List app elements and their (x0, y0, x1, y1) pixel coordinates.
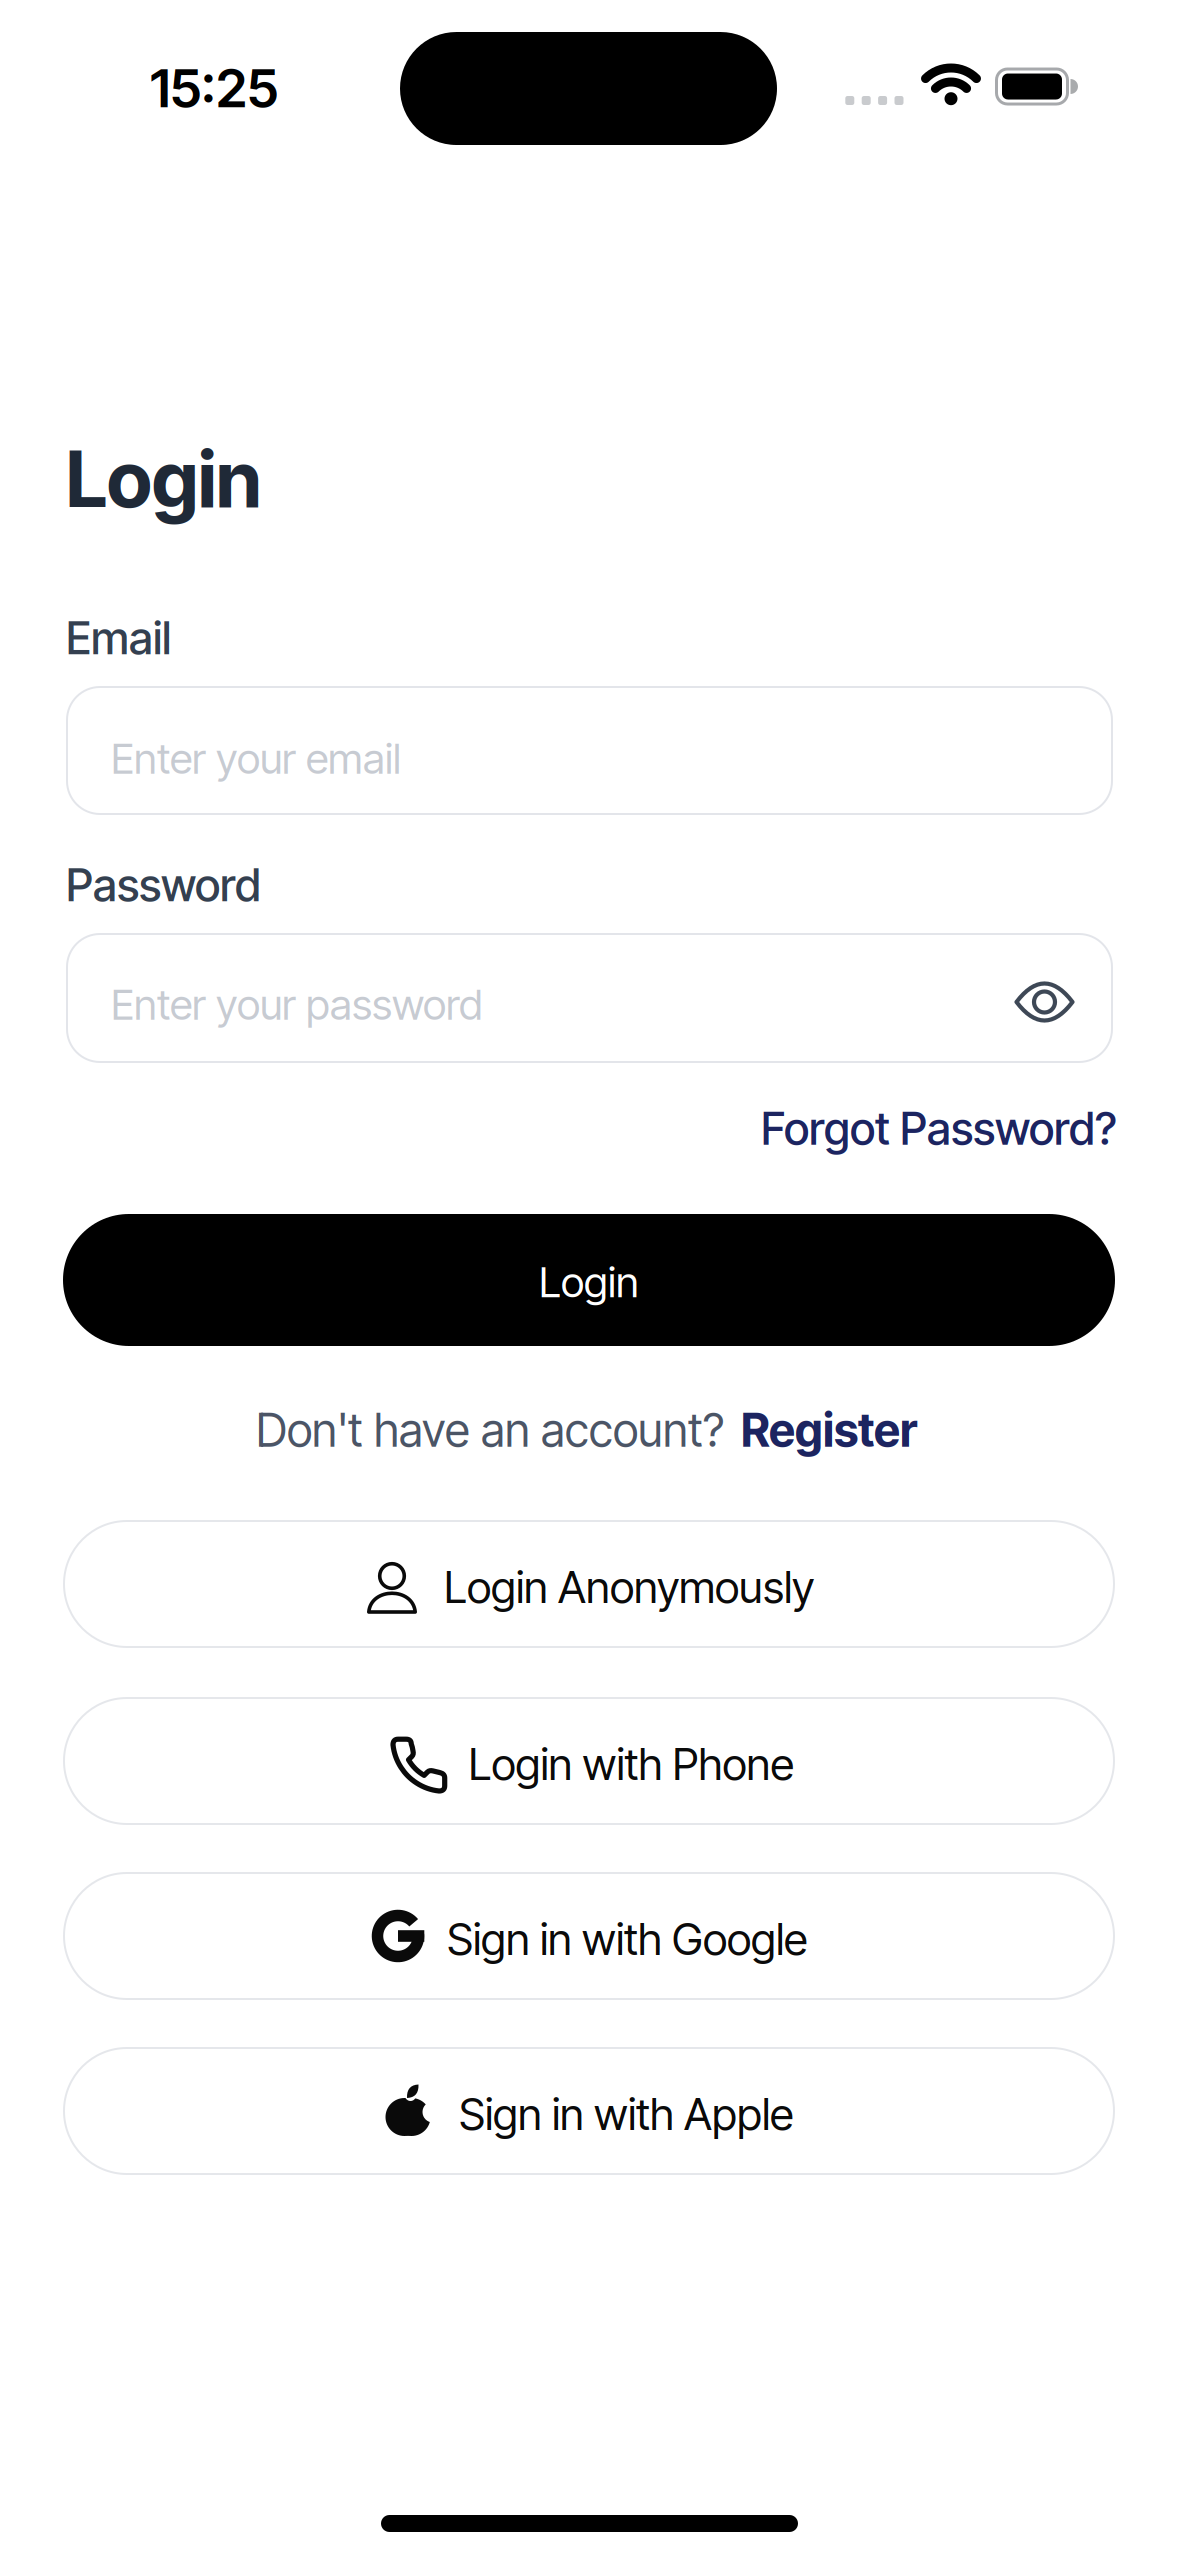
textField[interactable]: Enter your email (66, 686, 1113, 815)
button[interactable]: Register (741, 1402, 917, 1458)
staticText: Email (66, 611, 171, 665)
staticText: Login with Phone (468, 1737, 793, 1791)
button[interactable]: Login (63, 1214, 1115, 1346)
button[interactable]: Sign in with Google (63, 1872, 1115, 2000)
button[interactable]: Forgot Password? (761, 1101, 1117, 1156)
staticText: Password (66, 858, 261, 912)
staticText: Forgot Password? (761, 1101, 1117, 1156)
staticText: 15:25 (150, 56, 278, 120)
button[interactable]: Login with Phone (63, 1697, 1115, 1825)
button[interactable]: Login Anonymously (63, 1520, 1115, 1648)
staticText: Register (741, 1402, 917, 1458)
staticText: Login Anonymously (444, 1560, 814, 1614)
textField[interactable]: Enter your password (66, 933, 1113, 1063)
staticText: Don't have an account? (256, 1402, 724, 1458)
button[interactable]: Sign in with Apple (63, 2047, 1115, 2175)
staticText: Sign in with Google (447, 1912, 807, 1966)
staticText: Login (539, 1257, 639, 1307)
staticText: Enter your password (111, 979, 483, 1030)
staticText: Enter your email (111, 733, 401, 784)
staticText: Login (66, 432, 262, 526)
staticText: Sign in with Apple (459, 2087, 793, 2141)
button[interactable]: Show password (1010, 976, 1078, 1028)
